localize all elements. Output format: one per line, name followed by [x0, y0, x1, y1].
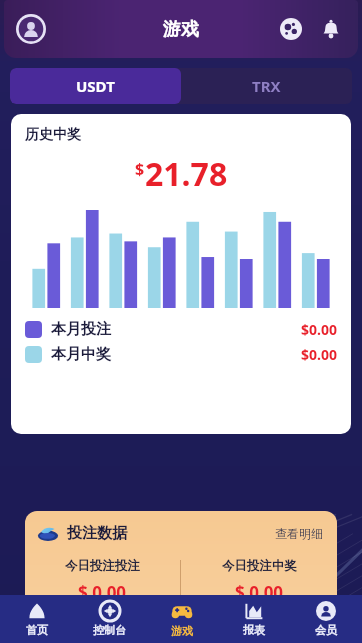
- button[interactable]: Notifications: [316, 14, 346, 44]
- staticText: $ 0.00: [235, 581, 284, 604]
- button[interactable]: USDT: [10, 68, 181, 104]
- button[interactable]: Language: [276, 14, 306, 44]
- button[interactable]: 会员: [290, 595, 362, 643]
- staticText: 游戏: [171, 624, 193, 638]
- button[interactable]: 控制台: [73, 595, 146, 643]
- button[interactable]: 报表: [218, 595, 290, 643]
- staticText: $ 0.00: [78, 581, 127, 604]
- staticText: 查看明细: [275, 526, 323, 541]
- staticText: 首页: [26, 623, 48, 637]
- staticText: $0.00: [301, 320, 337, 339]
- staticText: $0.00: [301, 345, 337, 364]
- staticText: 21.78: [145, 152, 228, 196]
- button[interactable]: 游戏: [146, 595, 218, 643]
- staticText: $: [135, 158, 145, 180]
- staticText: 本月投注: [51, 320, 111, 339]
- staticText: 本月中奖: [51, 345, 111, 364]
- staticText: TRX: [252, 76, 281, 96]
- button[interactable]: 查看明细: [275, 526, 323, 541]
- button[interactable]: 首页: [0, 595, 73, 643]
- staticText: 控制台: [93, 623, 126, 637]
- staticText: 今日投注投注: [65, 558, 140, 574]
- staticText: 会员: [315, 623, 337, 637]
- button[interactable]: Profile: [14, 12, 48, 46]
- staticText: USDT: [76, 76, 115, 96]
- staticText: 游戏: [163, 18, 199, 41]
- button[interactable]: 本月投注: [25, 320, 337, 339]
- button[interactable]: 本月中奖: [25, 345, 337, 364]
- staticText: 报表: [243, 623, 265, 637]
- button[interactable]: TRX: [181, 68, 352, 104]
- staticText: 今日投注中奖: [222, 558, 297, 574]
- staticText: 历史中奖: [25, 126, 81, 144]
- staticText: 投注数据: [67, 524, 127, 543]
